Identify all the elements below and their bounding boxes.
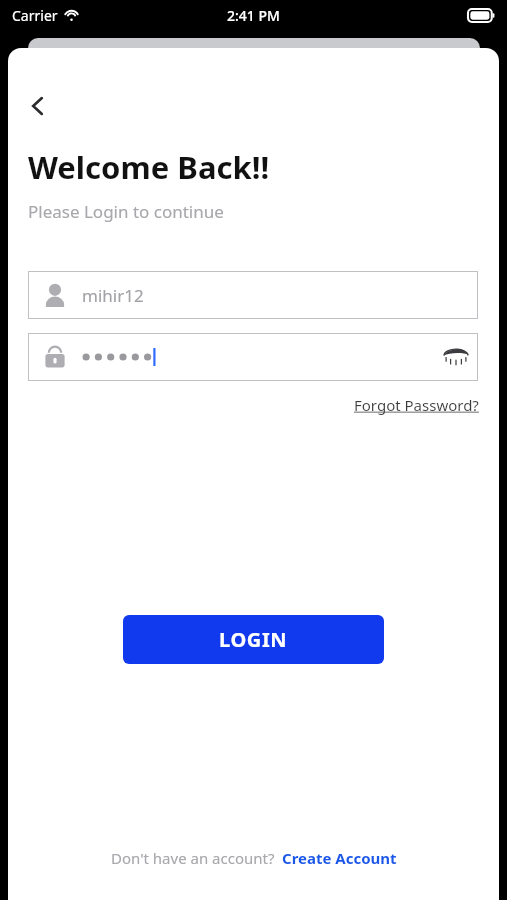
staticText: 2:41 PM (227, 6, 280, 25)
staticText: mihir12 (82, 284, 144, 307)
staticText: LOGIN (219, 626, 288, 653)
button[interactable]: Show password (28, 333, 478, 381)
button[interactable]: LOGIN (123, 615, 384, 664)
staticText: Forgot Password? (354, 395, 479, 415)
staticText: Don't have an account? (111, 848, 275, 868)
staticText: Carrier (12, 6, 58, 25)
button[interactable]: mihir12 (28, 271, 478, 319)
button[interactable]: Show password (434, 335, 478, 379)
staticText: Create Account (282, 848, 397, 868)
staticText: Welcome Back!! (28, 146, 270, 188)
staticText: Please Login to continue (28, 200, 224, 223)
button[interactable]: Create Account (282, 848, 397, 868)
button[interactable]: Back (16, 84, 60, 128)
button[interactable]: Forgot Password? (346, 391, 487, 419)
